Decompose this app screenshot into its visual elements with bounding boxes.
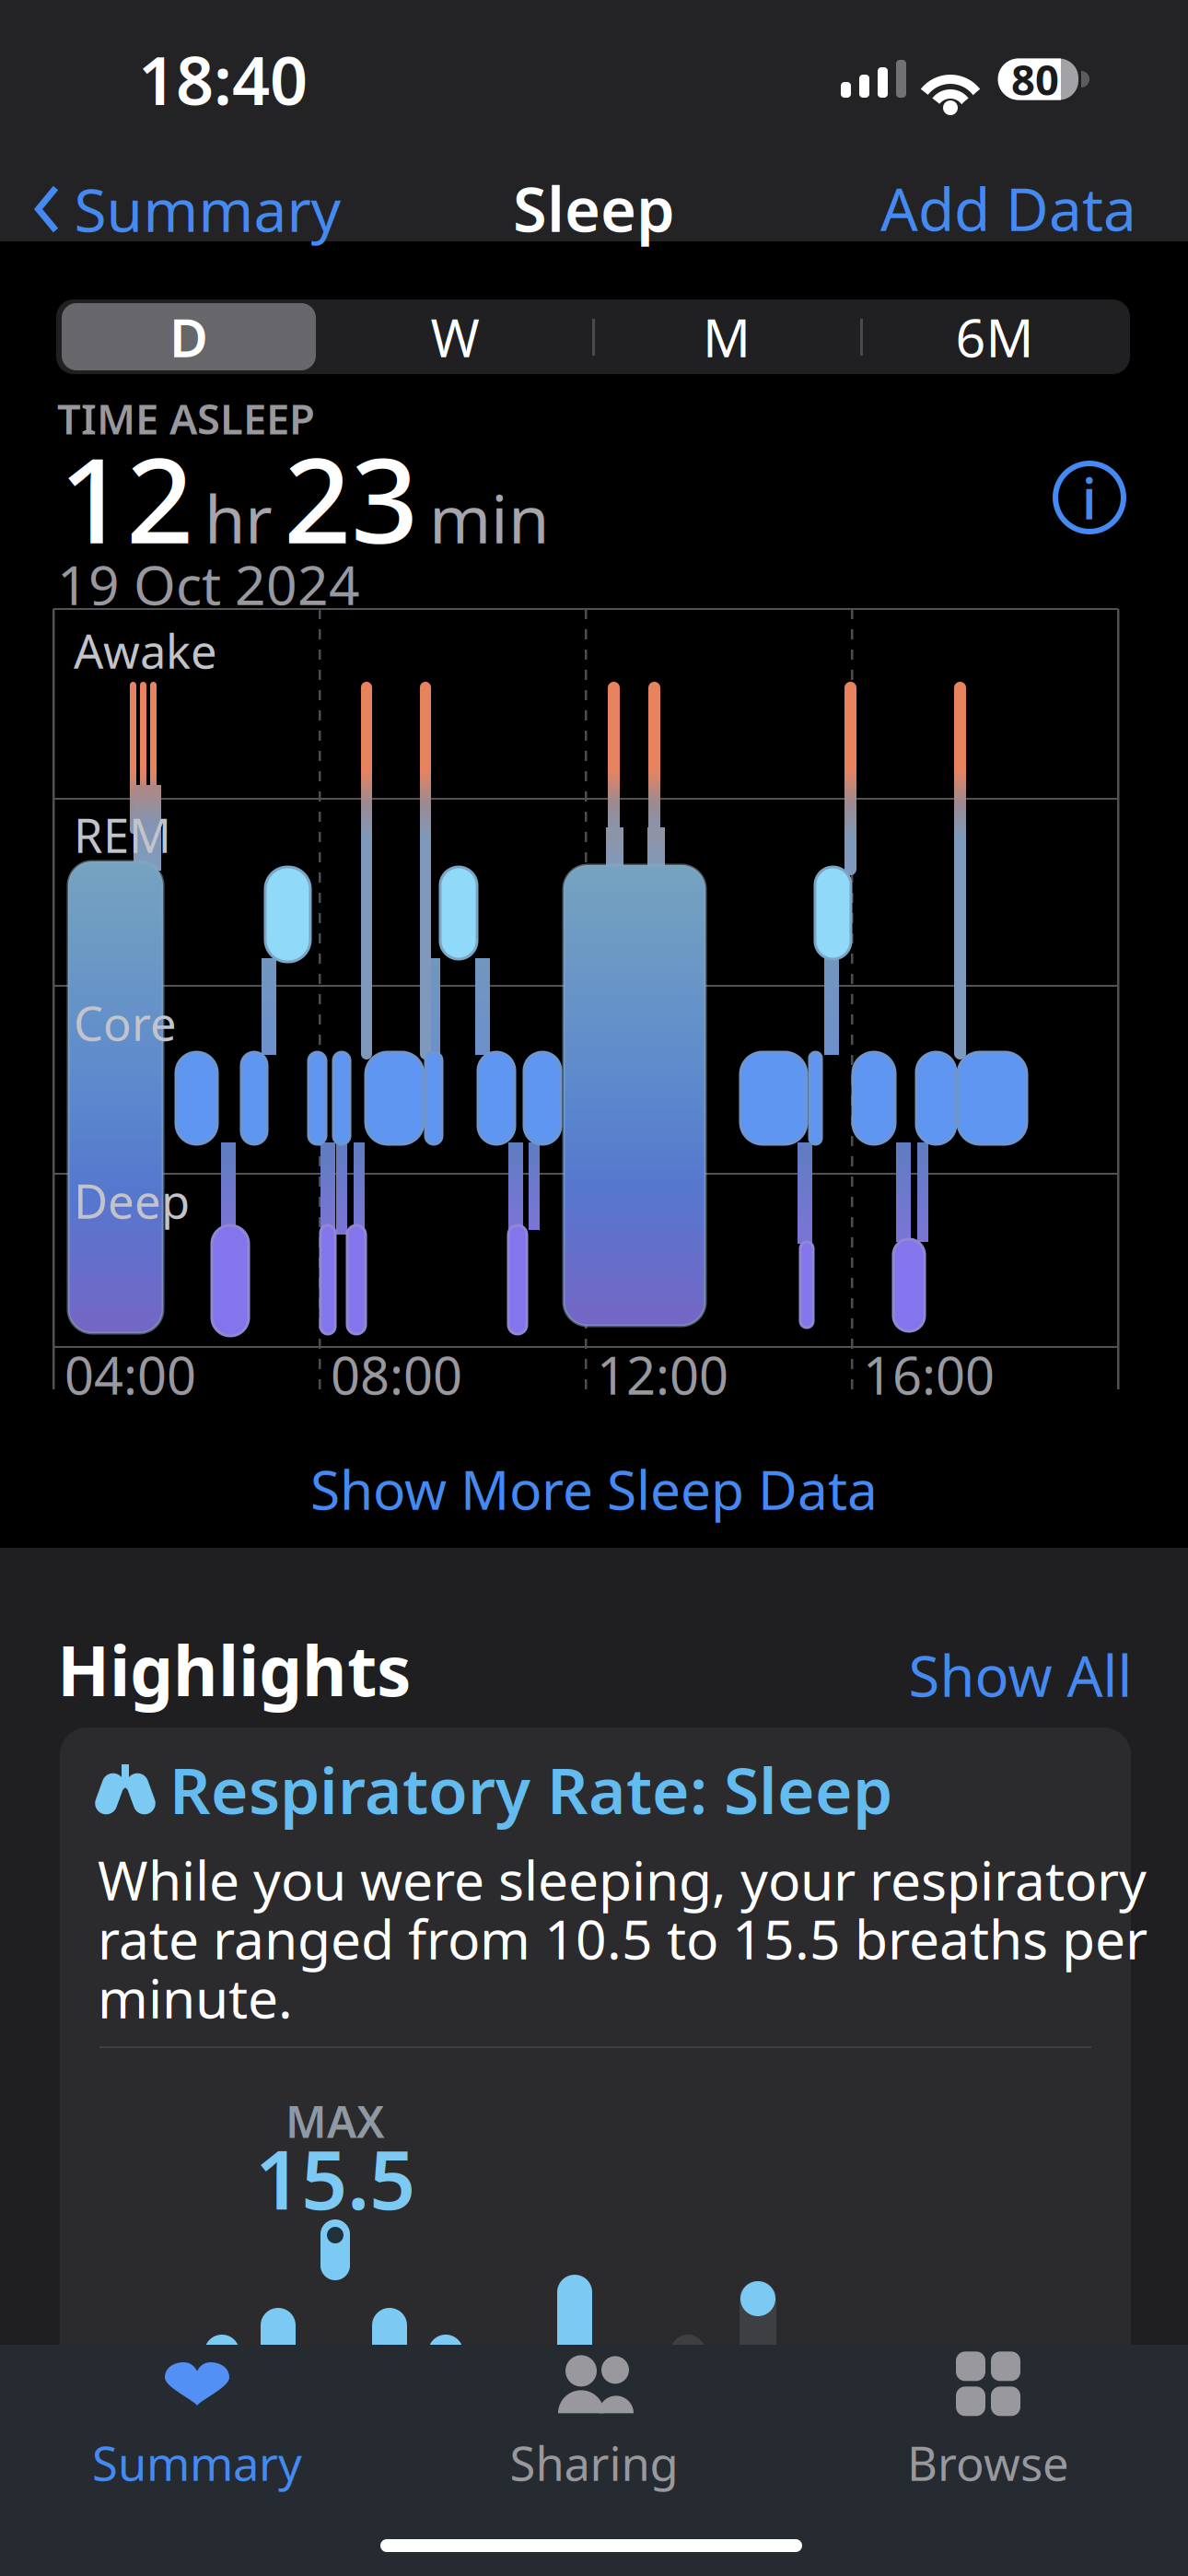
staticText: Deep (74, 1170, 190, 1232)
button[interactable]: Sharing (510, 2356, 678, 2494)
staticText: 08:00 (331, 1340, 462, 1409)
button[interactable]: Show All (908, 1637, 1132, 1712)
staticText: Awake (74, 619, 217, 681)
staticText: Browse (907, 2432, 1069, 2494)
staticText: 12 (59, 419, 193, 576)
staticText: 12:00 (597, 1340, 728, 1409)
button[interactable]: Browse (907, 2356, 1069, 2494)
button[interactable]: Add Data (880, 169, 1136, 247)
staticText: Sleep (513, 167, 675, 249)
button[interactable]: M (598, 303, 856, 370)
staticText: W (431, 302, 479, 372)
staticText: 6M (955, 302, 1034, 372)
staticText: Highlights (57, 1624, 411, 1715)
button[interactable]: Show More Sleep Data (310, 1453, 878, 1525)
button[interactable]: Summary (92, 2356, 302, 2494)
staticText: Summary (74, 170, 341, 248)
staticText: Show All (908, 1637, 1132, 1712)
staticText: REM (74, 804, 171, 866)
staticText: TIME ASLEEP (57, 391, 315, 446)
button[interactable]: More info (1055, 460, 1124, 535)
staticText: min (429, 473, 549, 562)
staticText: Sharing (510, 2432, 678, 2494)
staticText: D (169, 302, 208, 372)
staticText: Add Data (880, 169, 1136, 247)
staticText: Show More Sleep Data (310, 1453, 878, 1525)
staticText: 15.5 (255, 2124, 415, 2232)
staticText: hr (204, 473, 273, 562)
staticText: 80 (1011, 52, 1059, 107)
staticText: minute. (98, 1961, 293, 2033)
staticText: 18:40 (138, 35, 308, 123)
staticText: 23 (284, 419, 418, 576)
staticText: While you were sleeping, your respirator… (98, 1844, 1147, 1915)
staticText: Summary (92, 2432, 302, 2494)
button[interactable]: Summary (35, 170, 341, 248)
button[interactable]: Respiratory Rate: Sleep (0, 0, 1188, 2576)
staticText: 19 Oct 2024 (57, 548, 360, 620)
button[interactable]: 6M (866, 303, 1124, 370)
button[interactable]: W (326, 303, 584, 370)
staticText: Respiratory Rate: Sleep (169, 1747, 892, 1832)
staticText: M (703, 302, 751, 372)
staticText: 16:00 (863, 1340, 995, 1409)
staticText: rate ranged from 10.5 to 15.5 breaths pe… (98, 1903, 1147, 1974)
button[interactable]: D (62, 302, 316, 372)
staticText: MAX (285, 2091, 385, 2150)
staticText: 04:00 (64, 1340, 196, 1409)
staticText: Core (74, 992, 177, 1054)
staticText: i (1082, 460, 1097, 535)
